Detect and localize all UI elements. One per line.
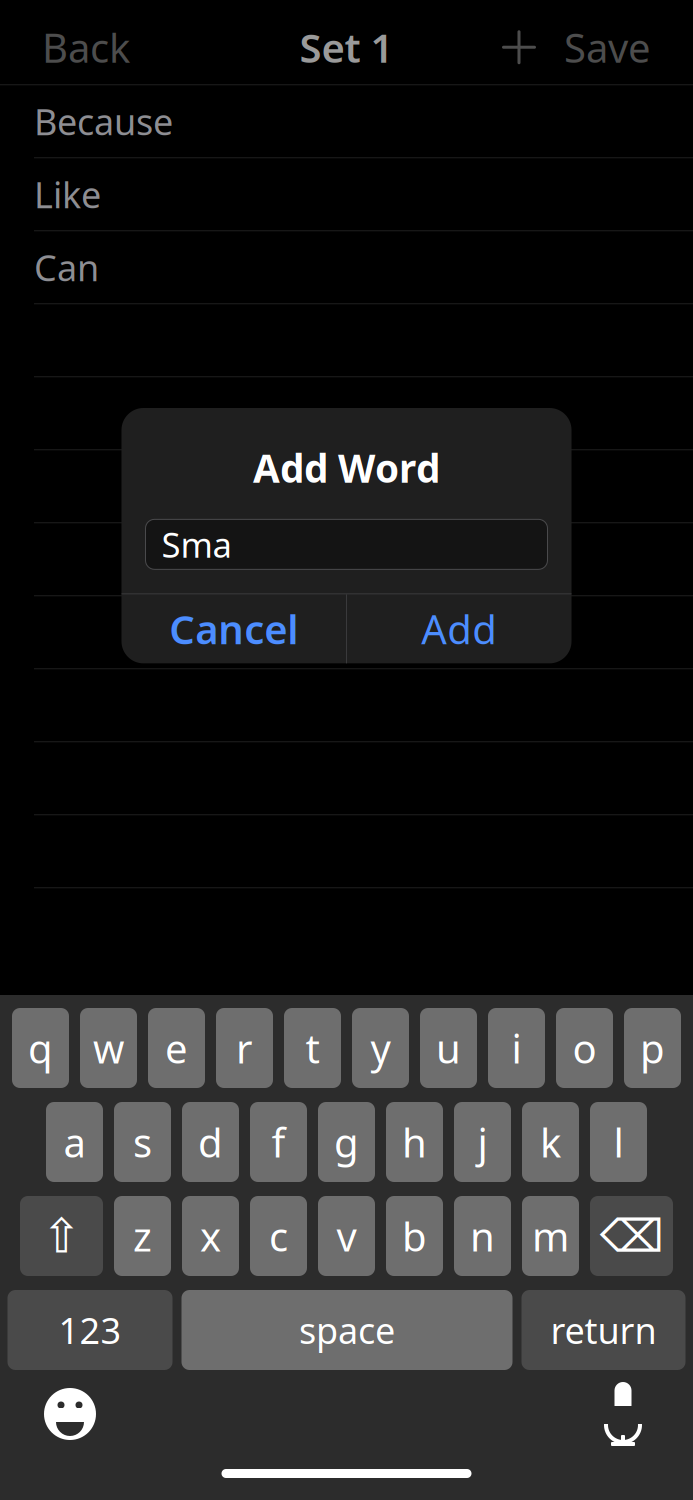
staticText: Like bbox=[34, 170, 101, 218]
button[interactable]: f bbox=[250, 1102, 307, 1182]
button[interactable]: w bbox=[80, 1008, 137, 1088]
button[interactable]: Save bbox=[556, 11, 659, 84]
staticText: Sma bbox=[161, 521, 231, 567]
staticText: l bbox=[613, 1115, 623, 1168]
staticText: m bbox=[532, 1209, 569, 1262]
staticText: u bbox=[436, 1021, 461, 1074]
button[interactable]: z bbox=[114, 1196, 171, 1276]
button[interactable]: Dictation bbox=[591, 1382, 655, 1446]
staticText: Add Word bbox=[253, 442, 440, 493]
staticText: b bbox=[402, 1209, 427, 1262]
staticText: Cancel bbox=[169, 602, 298, 655]
staticText: f bbox=[271, 1115, 285, 1168]
button[interactable]: s bbox=[114, 1102, 171, 1182]
staticText: Set 1 bbox=[299, 21, 393, 74]
button[interactable]: d bbox=[182, 1102, 239, 1182]
staticText: space bbox=[299, 1306, 395, 1354]
button[interactable]: p bbox=[624, 1008, 681, 1088]
staticText: s bbox=[133, 1115, 152, 1168]
staticText: i bbox=[511, 1021, 521, 1074]
button[interactable]: i bbox=[488, 1008, 545, 1088]
button[interactable]: Add bbox=[494, 22, 544, 72]
staticText: w bbox=[93, 1021, 124, 1074]
staticText: j bbox=[477, 1115, 487, 1168]
staticText: v bbox=[336, 1209, 356, 1262]
button[interactable]: Emoji bbox=[38, 1382, 102, 1446]
staticText: ⌫ bbox=[599, 1210, 663, 1262]
button[interactable]: return bbox=[521, 1290, 685, 1370]
staticText: d bbox=[198, 1115, 223, 1168]
staticText: Save bbox=[564, 21, 651, 74]
staticText: a bbox=[63, 1115, 85, 1168]
staticText: c bbox=[269, 1209, 288, 1262]
button[interactable]: o bbox=[556, 1008, 613, 1088]
staticText: h bbox=[402, 1115, 427, 1168]
button[interactable]: u bbox=[420, 1008, 477, 1088]
button[interactable]: Add bbox=[347, 594, 571, 663]
staticText: e bbox=[165, 1021, 188, 1074]
staticText: ⇧ bbox=[41, 1209, 81, 1263]
button[interactable]: h bbox=[386, 1102, 443, 1182]
button[interactable]: l bbox=[590, 1102, 647, 1182]
staticText: n bbox=[470, 1209, 495, 1262]
button[interactable]: 123 bbox=[7, 1290, 172, 1370]
button[interactable]: a bbox=[46, 1102, 103, 1182]
staticText: g bbox=[334, 1115, 359, 1168]
button[interactable]: Delete bbox=[590, 1196, 673, 1276]
button[interactable]: j bbox=[454, 1102, 511, 1182]
button[interactable]: e bbox=[148, 1008, 205, 1088]
staticText: o bbox=[572, 1021, 596, 1074]
staticText: Add bbox=[421, 602, 497, 655]
staticText: return bbox=[550, 1306, 656, 1354]
staticText: y bbox=[370, 1021, 390, 1074]
staticText: q bbox=[28, 1021, 53, 1074]
staticText: t bbox=[305, 1021, 319, 1074]
button[interactable]: k bbox=[522, 1102, 579, 1182]
button[interactable]: r bbox=[216, 1008, 273, 1088]
button[interactable]: space bbox=[181, 1290, 512, 1370]
button[interactable]: g bbox=[318, 1102, 375, 1182]
staticText: r bbox=[236, 1021, 253, 1074]
button[interactable]: y bbox=[352, 1008, 409, 1088]
button[interactable]: Cancel bbox=[121, 594, 346, 663]
staticText: x bbox=[200, 1209, 221, 1262]
button[interactable]: v bbox=[318, 1196, 375, 1276]
staticText: Because bbox=[34, 97, 173, 145]
staticText: Can bbox=[34, 243, 99, 291]
staticText: Back bbox=[42, 21, 130, 74]
button[interactable]: m bbox=[522, 1196, 579, 1276]
button[interactable]: Back bbox=[34, 11, 138, 84]
button[interactable]: t bbox=[284, 1008, 341, 1088]
button[interactable]: n bbox=[454, 1196, 511, 1276]
staticText: z bbox=[133, 1209, 152, 1262]
button[interactable]: c bbox=[250, 1196, 307, 1276]
button[interactable]: x bbox=[182, 1196, 239, 1276]
staticText: k bbox=[540, 1115, 561, 1168]
button[interactable]: b bbox=[386, 1196, 443, 1276]
button[interactable]: q bbox=[12, 1008, 69, 1088]
staticText: p bbox=[640, 1021, 665, 1074]
button[interactable]: Shift bbox=[20, 1196, 103, 1276]
staticText: 123 bbox=[58, 1306, 121, 1354]
